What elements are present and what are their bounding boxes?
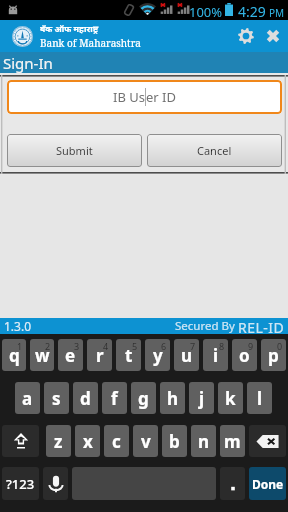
staticText: 6: [161, 340, 167, 352]
staticText: v: [141, 430, 151, 453]
staticText: q: [9, 344, 20, 367]
staticText: f: [111, 387, 118, 410]
staticText: 100%: [189, 3, 223, 21]
staticText: u: [181, 344, 193, 367]
staticText: e: [65, 344, 76, 367]
staticText: z: [54, 430, 63, 453]
staticText: t: [125, 344, 133, 367]
button[interactable]: a: [15, 382, 40, 414]
staticText: 8: [219, 340, 225, 352]
staticText: Done: [252, 476, 284, 492]
button[interactable]: h: [160, 382, 185, 414]
staticText: 4:29: [238, 2, 266, 21]
staticText: x: [83, 430, 93, 453]
button[interactable]: Done: [249, 467, 286, 500]
button[interactable]: Cancel: [147, 134, 282, 167]
button[interactable]: p: [261, 339, 286, 371]
button[interactable]: Settings: [234, 20, 258, 52]
button[interactable]: o: [232, 339, 257, 371]
button[interactable]: w: [30, 339, 54, 371]
staticText: p: [268, 344, 279, 367]
staticText: i: [213, 344, 219, 367]
button[interactable]: j: [189, 382, 214, 414]
button[interactable]: m: [220, 425, 245, 457]
button[interactable]: g: [131, 382, 156, 414]
staticText: b: [169, 430, 180, 453]
button[interactable]: i: [203, 339, 228, 371]
staticText: y: [153, 344, 163, 367]
button[interactable]: Period: [220, 467, 245, 500]
button[interactable]: IB Us: [7, 80, 282, 114]
staticText: h: [167, 387, 179, 410]
staticText: REL-ID: [238, 318, 285, 334]
staticText: j: [199, 387, 205, 410]
staticText: PM: [269, 6, 285, 20]
staticText: Cancel: [197, 143, 232, 158]
staticText: er ID: [146, 88, 176, 106]
staticText: Secured By: [175, 318, 235, 334]
button[interactable]: n: [191, 425, 216, 457]
button[interactable]: s: [44, 382, 69, 414]
button[interactable]: ?123: [2, 467, 39, 500]
staticText: IB Us: [113, 88, 145, 106]
staticText: g: [138, 387, 149, 410]
button[interactable]: v: [133, 425, 158, 457]
staticText: o: [239, 344, 250, 367]
button[interactable]: d: [73, 382, 98, 414]
button[interactable]: z: [46, 425, 71, 457]
staticText: 9: [248, 340, 254, 352]
button[interactable]: b: [162, 425, 187, 457]
button[interactable]: f: [102, 382, 127, 414]
staticText: s: [52, 387, 61, 410]
button[interactable]: q: [2, 339, 26, 371]
button[interactable]: t: [116, 339, 141, 371]
staticText: 5: [132, 340, 138, 352]
button[interactable]: Shift: [2, 425, 39, 457]
staticText: बँक ऑफ महाराष्ट्र: [40, 23, 98, 35]
staticText: 3: [74, 340, 80, 352]
staticText: 1.3.0: [4, 318, 32, 334]
staticText: 2: [45, 340, 51, 352]
button[interactable]: l: [247, 382, 272, 414]
staticText: 1: [17, 340, 23, 352]
staticText: l: [257, 387, 263, 410]
staticText: ?123: [6, 475, 35, 493]
staticText: 0: [277, 340, 283, 352]
button[interactable]: u: [174, 339, 199, 371]
staticText: Bank of Maharashtra: [40, 36, 141, 50]
staticText: n: [198, 430, 210, 453]
button[interactable]: y: [145, 339, 170, 371]
button[interactable]: Voice input: [43, 467, 68, 500]
button[interactable]: Submit: [7, 134, 142, 167]
button[interactable]: r: [87, 339, 112, 371]
staticText: m: [224, 430, 241, 453]
staticText: c: [112, 430, 121, 453]
button[interactable]: Close: [261, 20, 285, 52]
button[interactable]: Backspace: [249, 425, 286, 457]
staticText: k: [225, 387, 236, 410]
staticText: Sign-In: [3, 53, 53, 73]
staticText: 4: [103, 340, 109, 352]
staticText: r: [96, 344, 104, 367]
button[interactable]: x: [75, 425, 100, 457]
staticText: w: [35, 344, 50, 367]
button[interactable]: e: [58, 339, 83, 371]
staticText: d: [80, 387, 91, 410]
staticText: a: [22, 387, 33, 410]
staticText: Submit: [56, 143, 93, 158]
button[interactable]: c: [104, 425, 129, 457]
button[interactable]: k: [218, 382, 243, 414]
staticText: 7: [190, 340, 196, 352]
